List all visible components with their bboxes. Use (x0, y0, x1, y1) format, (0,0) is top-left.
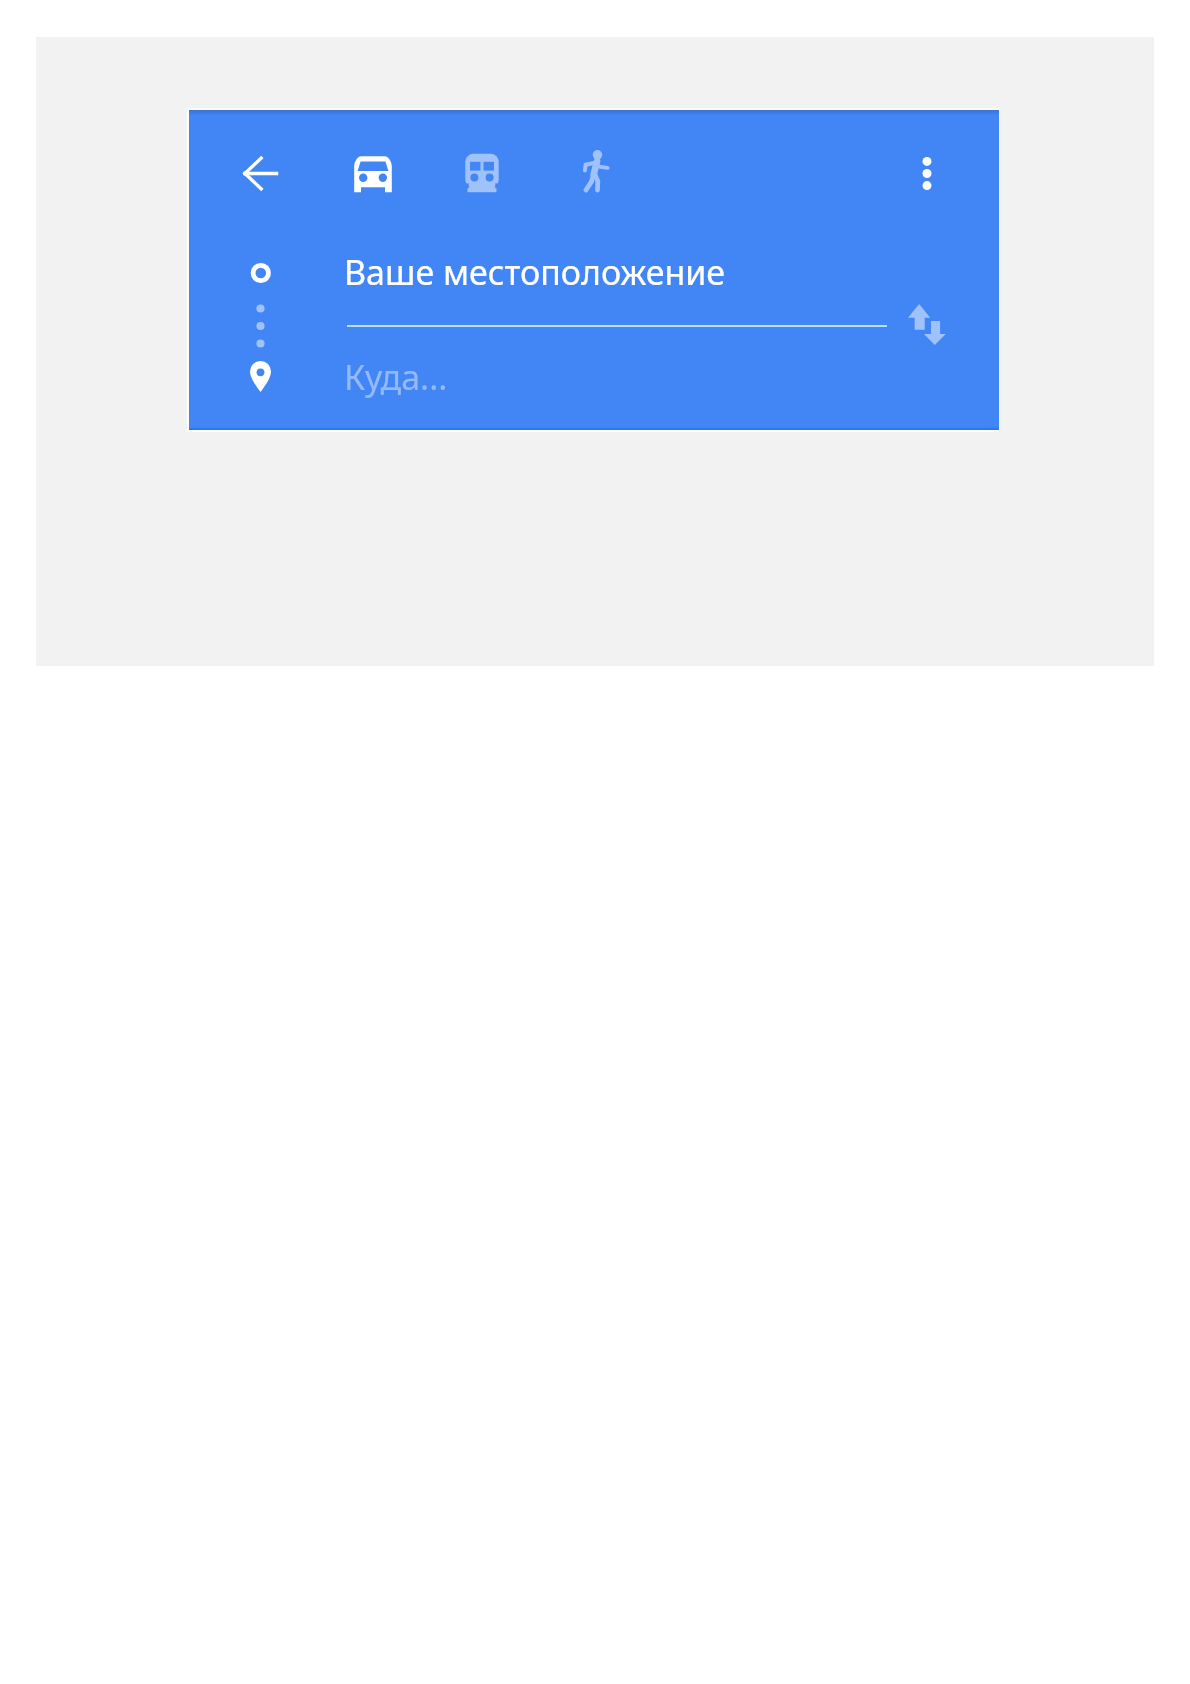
button[interactable]: Driving (353, 155, 393, 193)
button[interactable]: Walking (576, 150, 614, 192)
button[interactable]: Куда... (344, 354, 448, 400)
button[interactable]: Back (243, 156, 278, 191)
button[interactable]: Transit (463, 153, 501, 193)
button[interactable]: Ваше местоположение (344, 249, 726, 295)
button[interactable]: Swap start and destination (908, 304, 946, 345)
button[interactable]: More options (918, 156, 936, 191)
